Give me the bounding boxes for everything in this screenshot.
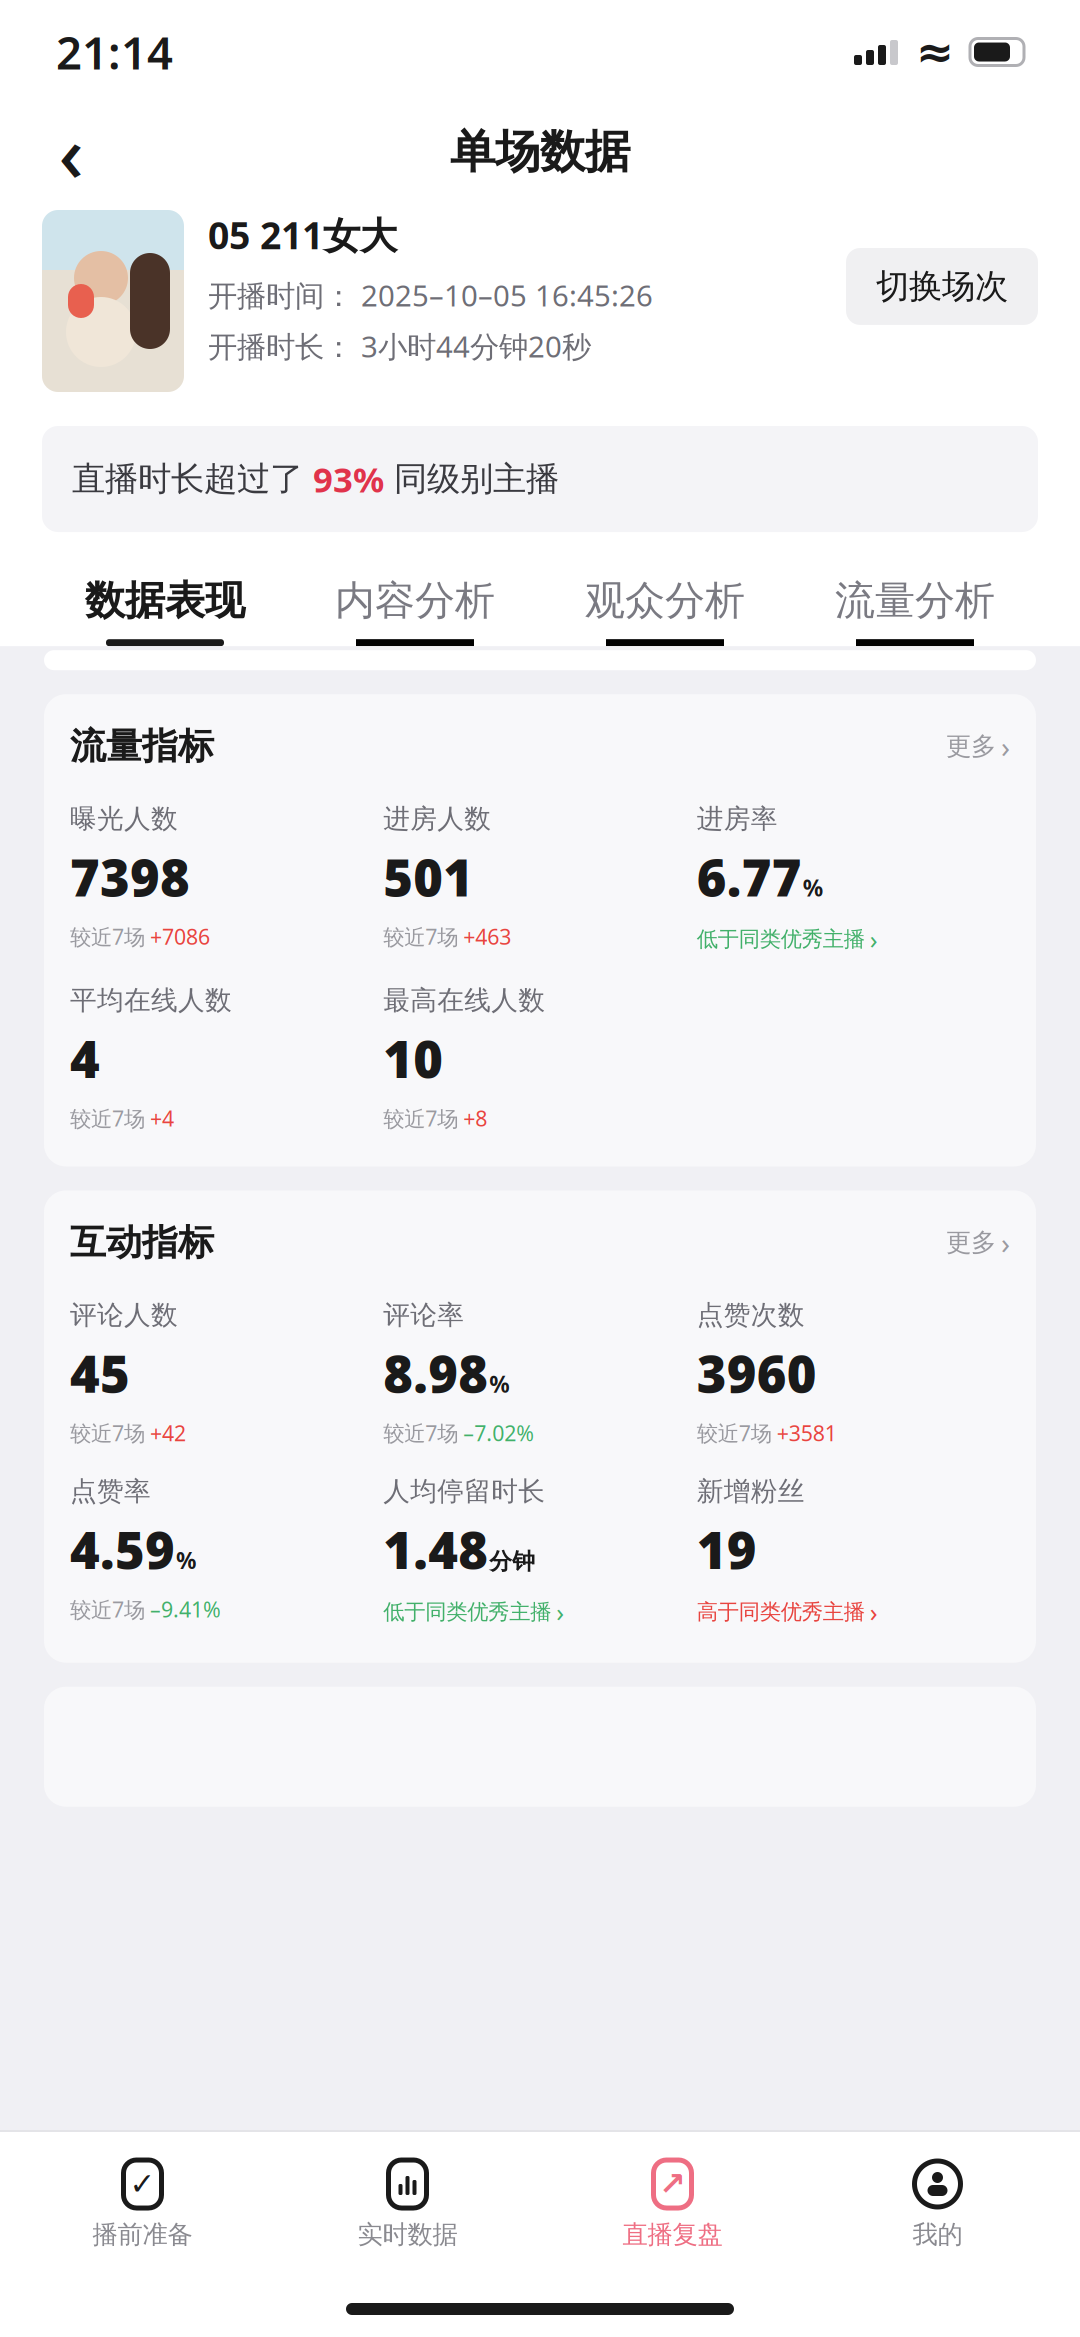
staticText: 较近7场: [70, 1419, 145, 1447]
staticText: ≈: [916, 26, 954, 78]
staticText: 较近7场: [70, 1104, 145, 1132]
button[interactable]: 实时数据: [275, 2146, 540, 2258]
staticText: 人均停留时长: [383, 1475, 545, 1508]
staticText: 流量指标: [70, 724, 214, 768]
staticText: 1.48: [383, 1516, 488, 1583]
button[interactable]: ✓: [10, 2146, 275, 2258]
staticText: %: [176, 1545, 196, 1575]
staticText: 21:14: [56, 22, 173, 82]
staticText: 05 211女大: [208, 210, 397, 260]
button[interactable]: 我的: [805, 2146, 1070, 2258]
staticText: 高于同类优秀主播: [697, 1599, 865, 1625]
staticText: 数据表现: [85, 576, 245, 625]
staticText: 切换场次: [876, 266, 1008, 307]
staticText: 较近7场: [383, 922, 458, 951]
staticText: 进房人数: [383, 802, 491, 835]
staticText: 开播时长： 3小时44分钟20秒: [208, 326, 591, 365]
staticText: 更多: [946, 1227, 996, 1258]
staticText: 观众分析: [585, 576, 745, 625]
staticText: 播前准备: [92, 2219, 192, 2250]
staticText: 流量分析: [835, 576, 995, 625]
staticText: +7086: [150, 922, 210, 951]
staticText: 较近7场: [383, 1419, 458, 1447]
button[interactable]: 互动指标: [70, 1220, 1010, 1265]
staticText: 较近7场: [383, 1104, 458, 1132]
staticText: 点赞次数: [697, 1299, 805, 1331]
staticText: +8: [463, 1104, 487, 1132]
staticText: ›: [1001, 727, 1010, 766]
staticText: ›: [1001, 1223, 1010, 1262]
staticText: 3960: [697, 1339, 817, 1407]
staticText: 单场数据: [450, 124, 630, 180]
staticText: 93%: [313, 456, 384, 502]
staticText: 7398: [70, 843, 190, 910]
staticText: 同级别主播: [384, 458, 559, 499]
staticText: 开播时间： 2025–10–05 16:45:26: [208, 276, 653, 315]
staticText: ›: [870, 1595, 878, 1629]
staticText: 我的: [912, 2219, 962, 2250]
staticText: 45: [70, 1339, 130, 1407]
staticText: 互动指标: [70, 1220, 214, 1265]
staticText: +42: [150, 1419, 186, 1447]
staticText: –7.02%: [463, 1419, 534, 1447]
staticText: 6.77: [697, 843, 802, 910]
staticText: 内容分析: [335, 576, 495, 625]
staticText: %: [489, 1369, 509, 1399]
staticText: 实时数据: [357, 2219, 457, 2250]
staticText: 8.98: [383, 1339, 488, 1407]
staticText: 更多: [946, 731, 996, 762]
staticText: 4.59: [70, 1516, 175, 1583]
staticText: 直播复盘: [622, 2219, 722, 2250]
staticText: 较近7场: [70, 1595, 145, 1623]
staticText: %: [803, 873, 823, 903]
button[interactable]: 返回: [36, 117, 106, 187]
staticText: +3581: [777, 1419, 837, 1447]
staticText: +4: [150, 1104, 174, 1132]
staticText: 点赞率: [70, 1475, 151, 1508]
staticText: 最高在线人数: [383, 984, 545, 1017]
staticText: +463: [463, 922, 511, 951]
staticText: ✓: [129, 2167, 155, 2201]
button[interactable]: 切换场次: [846, 248, 1038, 325]
staticText: 曝光人数: [70, 802, 178, 835]
staticText: 新增粉丝: [697, 1475, 805, 1508]
staticText: –9.41%: [150, 1595, 221, 1623]
staticText: 501: [383, 843, 473, 910]
button[interactable]: 流量指标: [70, 724, 1010, 768]
staticText: 分钟: [489, 1548, 535, 1575]
staticText: 低于同类优秀主播: [697, 926, 865, 952]
staticText: 评论率: [383, 1299, 464, 1331]
button[interactable]: 数据表现: [40, 576, 290, 646]
button[interactable]: 内容分析: [290, 576, 540, 646]
staticText: 10: [383, 1025, 443, 1092]
staticText: ‹: [58, 101, 83, 203]
button[interactable]: ↗: [540, 2146, 805, 2258]
staticText: 19: [697, 1516, 757, 1583]
staticText: ↗: [659, 2166, 686, 2202]
staticText: 较近7场: [697, 1419, 772, 1447]
staticText: ›: [556, 1595, 564, 1629]
button[interactable]: 观众分析: [540, 576, 790, 646]
staticText: 直播时长超过了: [72, 458, 313, 499]
staticText: 评论人数: [70, 1299, 178, 1331]
staticText: 低于同类优秀主播: [383, 1599, 551, 1625]
staticText: ›: [870, 922, 878, 956]
staticText: 进房率: [697, 802, 778, 835]
staticText: 较近7场: [70, 922, 145, 951]
button[interactable]: 流量分析: [790, 576, 1040, 646]
staticText: 4: [70, 1025, 100, 1092]
staticText: 平均在线人数: [70, 984, 232, 1017]
